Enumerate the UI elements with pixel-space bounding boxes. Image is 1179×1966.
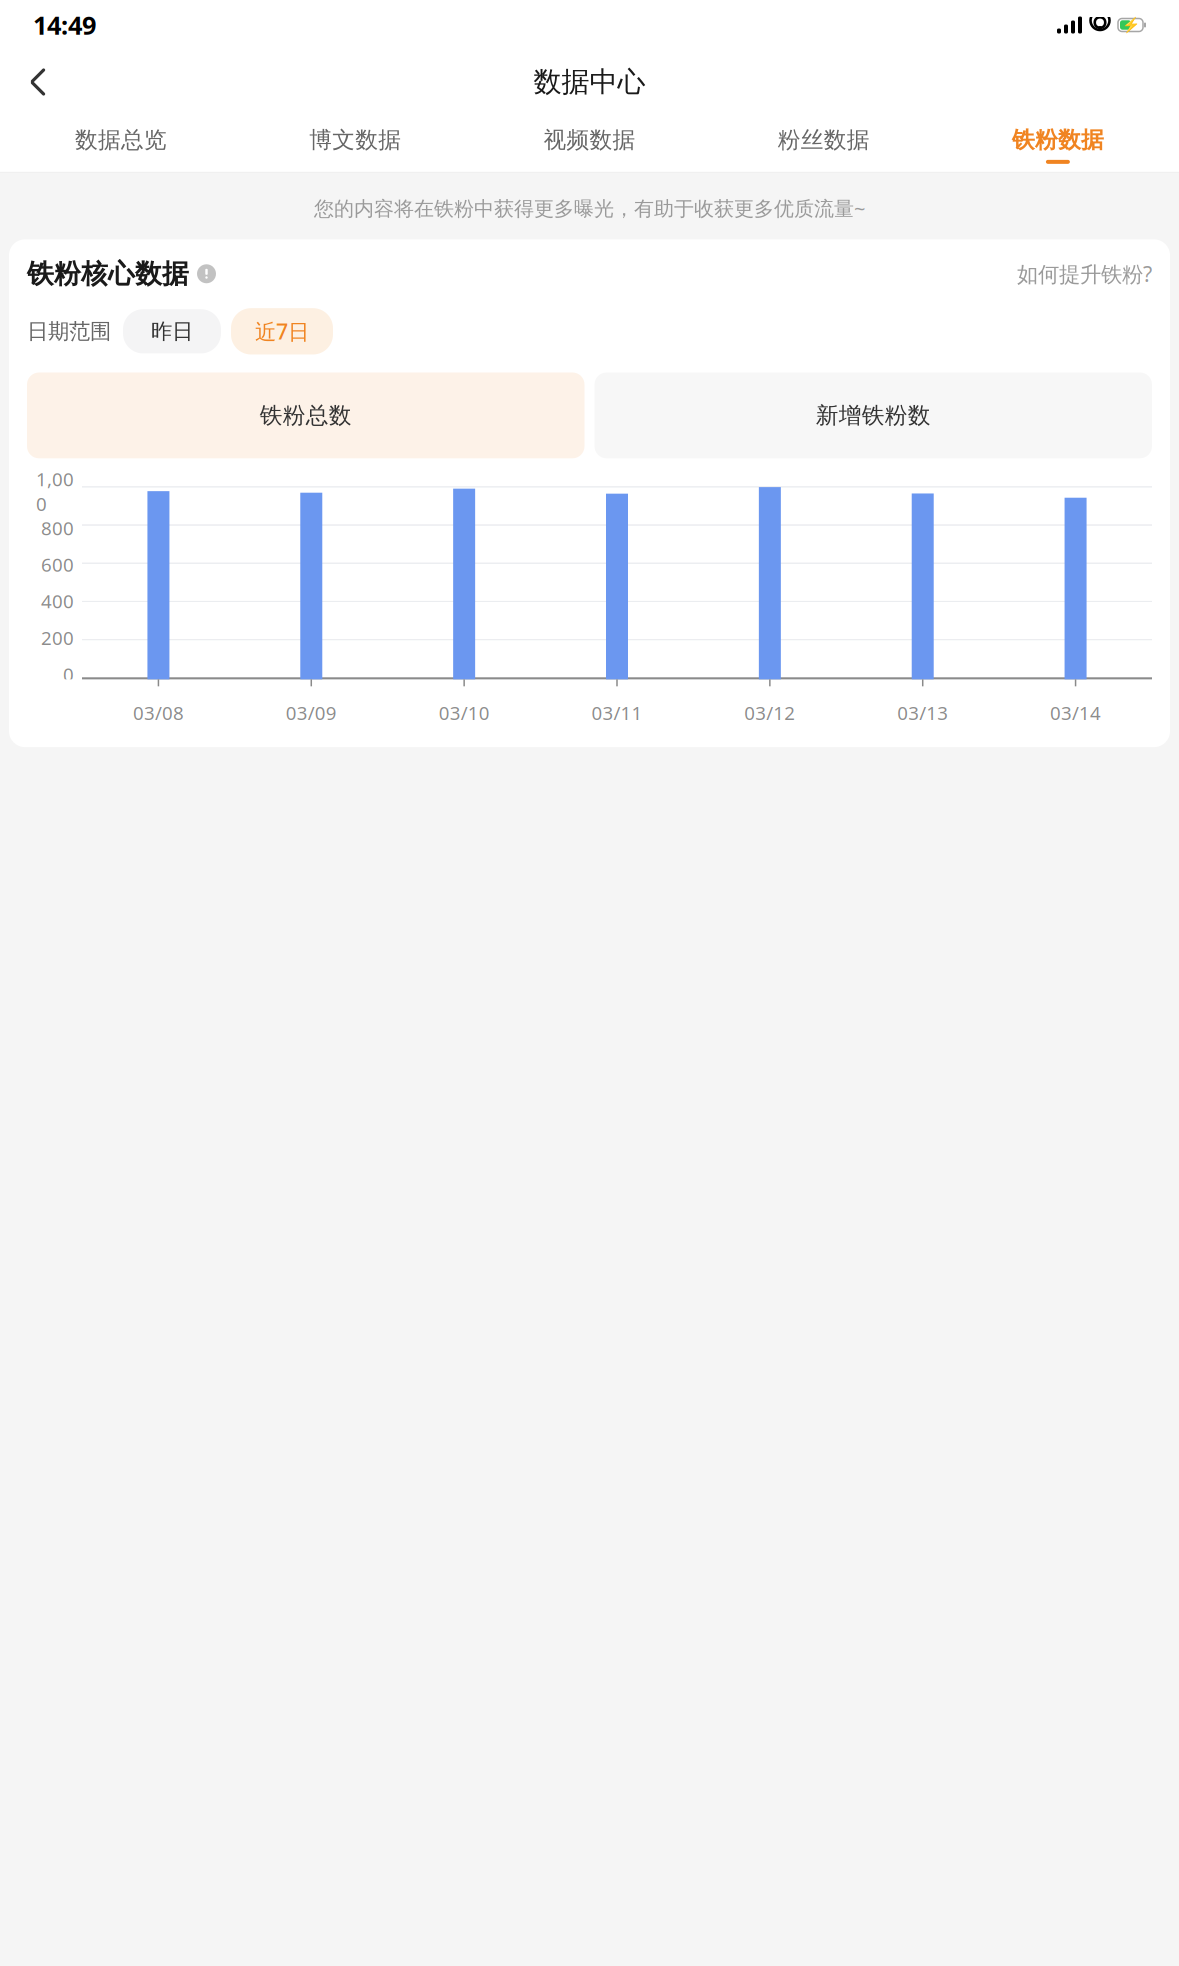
button[interactable]: 新增铁粉数 — [594, 372, 1152, 458]
button[interactable]: 博文数据 — [238, 114, 472, 172]
staticText: 14:49 — [33, 8, 96, 42]
button[interactable]: 数据总览 — [4, 114, 238, 172]
staticText: 铁粉数据 — [1012, 126, 1104, 154]
staticText: 铁粉核心数据 — [27, 257, 189, 290]
button[interactable]: 昨日 — [123, 309, 221, 353]
staticText: 600 — [41, 552, 74, 577]
staticText: 03/13 — [897, 700, 948, 725]
staticText: 400 — [41, 589, 74, 613]
staticText: 如何提升铁粉? — [1017, 260, 1152, 288]
staticText: 博文数据 — [309, 126, 401, 154]
staticText: 800 — [41, 515, 74, 540]
button[interactable]: 返回 — [16, 60, 60, 104]
staticText: 粉丝数据 — [778, 126, 870, 154]
button[interactable]: 铁粉总数 — [27, 372, 584, 458]
staticText: 数据总览 — [75, 126, 167, 154]
button[interactable]: 铁粉数据 — [941, 114, 1175, 172]
staticText: ⚡ — [1121, 17, 1139, 33]
staticText: 新增铁粉数 — [816, 401, 931, 429]
staticText: 0 — [63, 662, 74, 687]
button[interactable]: 近7日 — [231, 308, 333, 354]
staticText: 1,000 — [36, 466, 74, 516]
staticText: 03/10 — [439, 700, 490, 725]
staticText: 03/09 — [286, 700, 337, 725]
staticText: 您的内容将在铁粉中获得更多曝光，有助于收获更多优质流量~ — [314, 195, 865, 221]
staticText: 03/11 — [591, 700, 642, 725]
staticText: 日期范围 — [27, 318, 111, 344]
button[interactable]: 视频数据 — [472, 114, 707, 172]
staticText: 昨日 — [151, 318, 193, 344]
staticText: 03/14 — [1050, 700, 1101, 725]
staticText: 200 — [41, 625, 74, 650]
button[interactable]: 如何提升铁粉? — [1017, 260, 1152, 288]
staticText: 近7日 — [255, 317, 309, 345]
staticText: 03/12 — [744, 700, 795, 725]
button[interactable]: 粉丝数据 — [707, 114, 941, 172]
staticText: 视频数据 — [543, 126, 635, 154]
staticText: 数据中心 — [533, 65, 645, 99]
staticText: 铁粉总数 — [260, 401, 352, 429]
staticText: 03/08 — [133, 700, 184, 725]
